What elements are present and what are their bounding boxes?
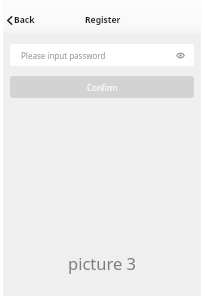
staticText: Back [14,14,35,26]
button[interactable]: Confirm [10,76,194,98]
staticText: Confirm [87,82,118,93]
staticText: picture 3 [68,252,136,274]
button[interactable]: Show password [174,49,187,62]
staticText: Register [85,14,121,26]
button[interactable]: Back [3,10,43,30]
staticText: Please input password [21,50,106,61]
button[interactable]: Please input password [10,44,194,66]
